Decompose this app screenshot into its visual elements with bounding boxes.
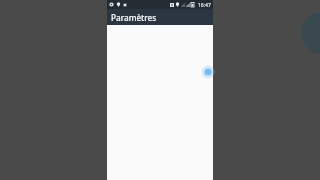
other: Touch indicator bbox=[107, 0, 213, 180]
button[interactable]: Paramètres bbox=[107, 9, 213, 25]
staticText: Paramètres bbox=[111, 12, 157, 23]
staticText: 16:47 bbox=[197, 1, 211, 8]
